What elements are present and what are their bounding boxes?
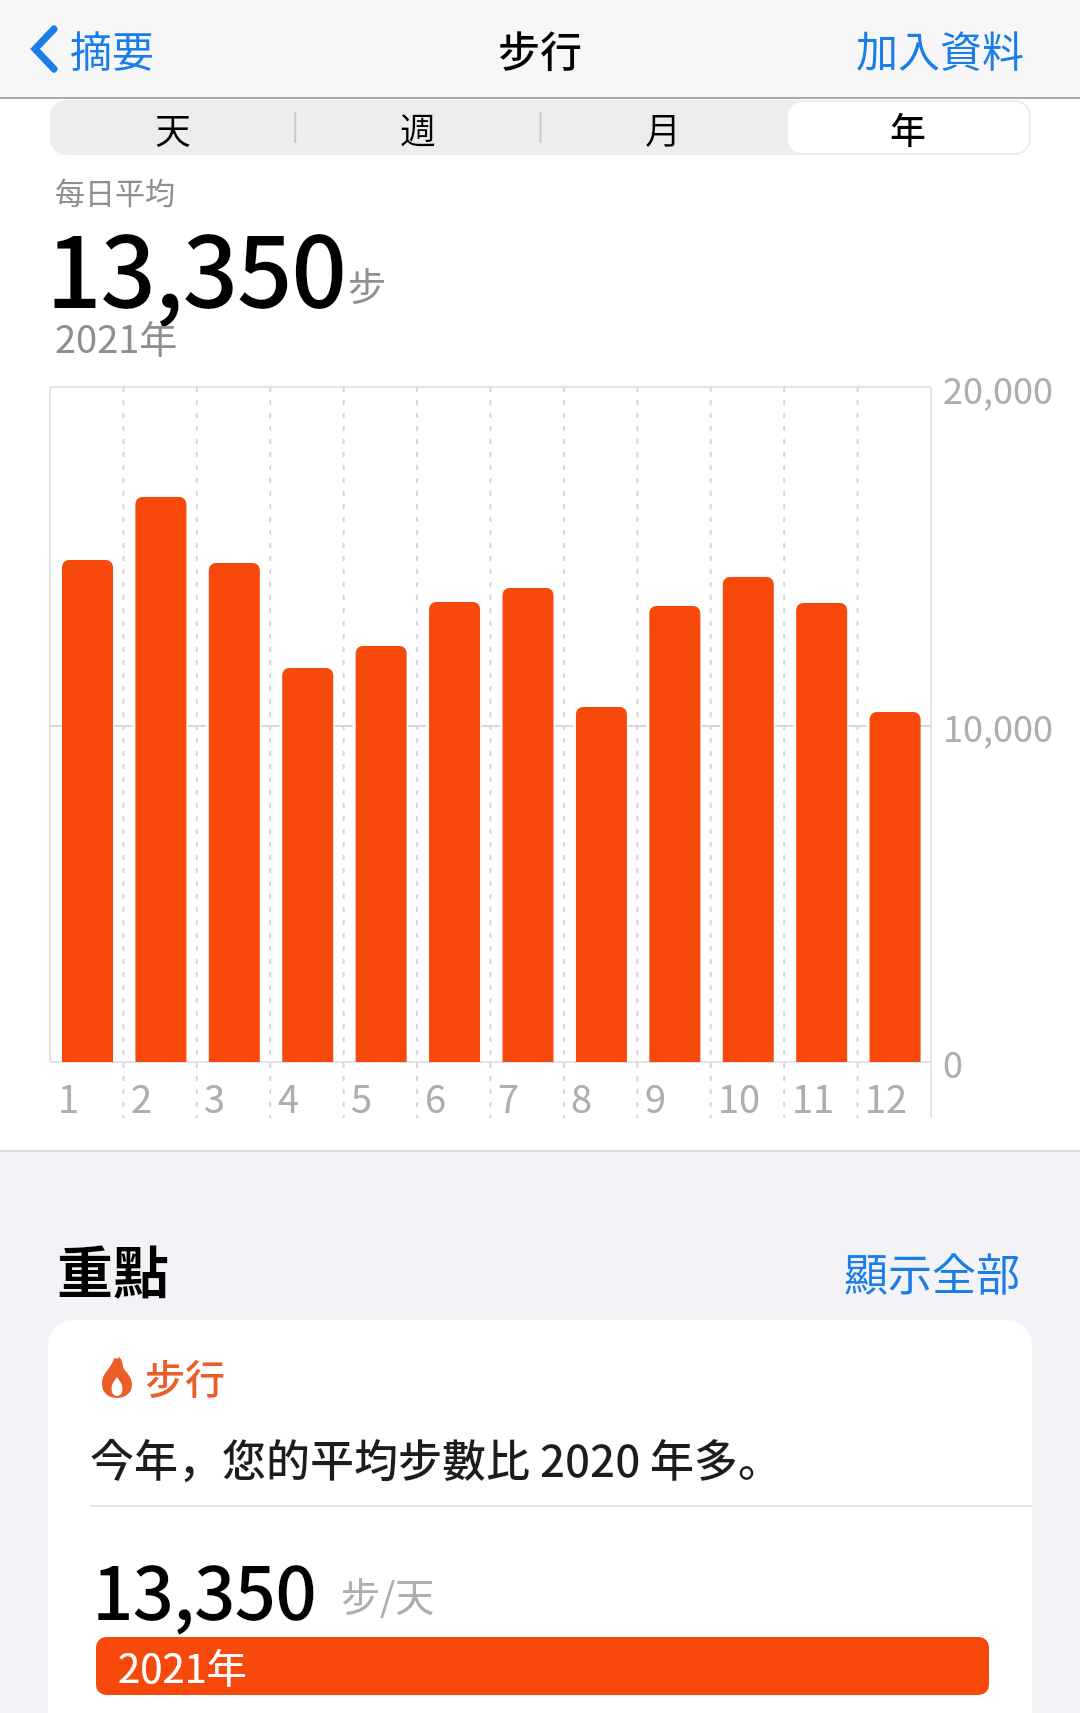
staticText: 年 <box>890 102 927 154</box>
button[interactable]: 步行 <box>48 1320 1032 1713</box>
button[interactable]: 年 <box>786 100 1031 155</box>
staticText: 今年，您的平均步數比 2020 年多。 <box>90 1426 783 1490</box>
button[interactable]: 加入資料 <box>856 18 1025 79</box>
staticText: 步/天 <box>341 1566 435 1622</box>
staticText: 8 <box>571 1069 593 1124</box>
staticText: 加入資料 <box>856 18 1025 79</box>
button[interactable]: 週 <box>296 100 541 155</box>
staticText: 2 <box>131 1069 153 1124</box>
staticText: 1 <box>58 1069 80 1124</box>
staticText: 20,000 <box>943 362 1053 414</box>
staticText: 13,350 <box>92 1535 316 1641</box>
button[interactable]: 天 <box>50 100 296 155</box>
staticText: 6 <box>425 1069 447 1124</box>
staticText: 重點 <box>57 1228 169 1309</box>
staticText: 12 <box>865 1069 908 1124</box>
staticText: 10 <box>718 1069 761 1124</box>
staticText: 5 <box>351 1069 373 1124</box>
staticText: 步行 <box>498 18 583 79</box>
staticText: 月 <box>645 102 682 154</box>
button[interactable]: 摘要 <box>30 18 155 79</box>
staticText: 摘要 <box>70 18 155 79</box>
button[interactable]: 月 <box>541 100 786 155</box>
staticText: 每日平均 <box>55 169 175 212</box>
staticText: 顯示全部 <box>844 1240 1020 1300</box>
staticText: 3 <box>204 1069 226 1124</box>
staticText: 13,350 <box>46 194 346 336</box>
staticText: 4 <box>278 1069 300 1124</box>
staticText: 2021年 <box>118 1637 247 1695</box>
staticText: 週 <box>400 102 437 154</box>
staticText: 0 <box>943 1036 963 1088</box>
staticText: 天 <box>155 102 192 154</box>
staticText: 7 <box>498 1069 520 1124</box>
staticText: 步行 <box>145 1348 225 1406</box>
staticText: 9 <box>645 1069 667 1124</box>
staticText: 步 <box>348 256 387 311</box>
staticText: 11 <box>792 1069 835 1124</box>
staticText: 10,000 <box>943 700 1053 752</box>
staticText: 2021年 <box>55 309 178 364</box>
button[interactable]: 顯示全部 <box>820 1240 1020 1300</box>
